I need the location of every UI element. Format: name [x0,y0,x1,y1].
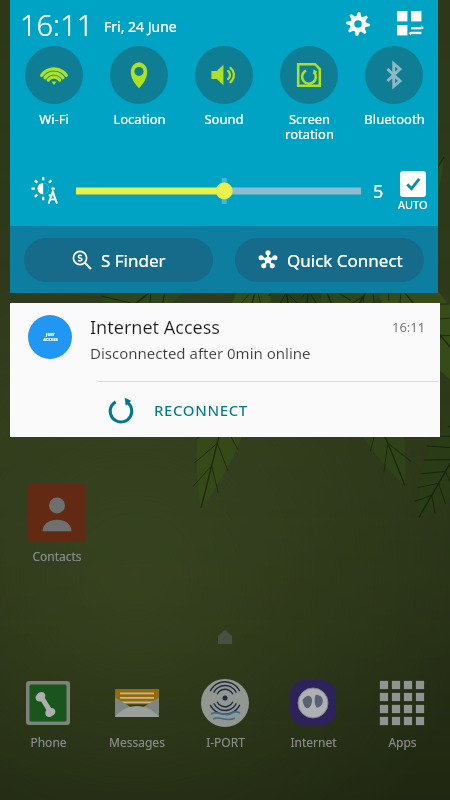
staticText: 16:11 [392,318,426,336]
button[interactable]: Quick Connect [235,238,424,282]
staticText: Internet [290,734,337,750]
staticText: Messages [109,734,165,750]
staticText: Fri, 24 June [104,17,177,36]
staticText: Internet Access [90,315,220,340]
button[interactable]: Sound [183,46,265,128]
button[interactable]: I-PORT [185,676,265,750]
staticText: Apps [388,734,417,750]
staticText: Bluetooth [364,110,425,128]
button[interactable]: Wi-Fi [13,46,95,128]
button[interactable]: Internet [273,676,353,750]
button[interactable]: S Finder [24,238,213,282]
button[interactable] [76,178,361,204]
staticText: Sound [204,110,244,128]
button[interactable]: Auto brightness [28,174,62,208]
staticText: JUST ACCESS [43,332,58,342]
staticText: S Finder [101,249,166,272]
button[interactable]: Messages [97,676,177,750]
staticText: 16:11 [20,5,94,44]
staticText: Disconnected after 0min online [90,343,311,363]
staticText: Screen rotation [285,110,334,143]
staticText: RECONNECT [154,400,248,420]
button[interactable]: Settings [338,4,378,44]
staticText: Quick Connect [287,249,403,272]
button[interactable]: Phone [8,676,88,750]
button[interactable]: Apps [362,676,442,750]
button[interactable]: Location [98,46,180,128]
staticText: Contacts [32,548,82,564]
staticText: Phone [30,734,67,750]
button[interactable]: Screen rotation [268,46,350,143]
button[interactable]: AUTO [398,171,428,212]
button[interactable]: Contacts [14,484,100,564]
button[interactable]: RECONNECT [10,382,440,437]
staticText: AUTO [398,197,428,212]
staticText: Location [113,110,166,128]
button[interactable]: Bluetooth [353,46,435,128]
staticText: 5 [373,179,384,204]
staticText: I-PORT [206,734,245,750]
button[interactable]: Edit quick settings [390,4,430,44]
staticText: Wi-Fi [39,110,69,128]
